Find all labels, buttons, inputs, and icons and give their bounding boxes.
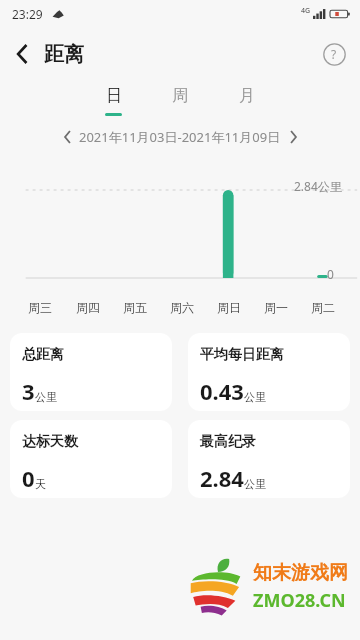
button[interactable]: 月 xyxy=(213,80,281,124)
staticText: 23:29 xyxy=(12,6,43,22)
staticText: 4G xyxy=(301,6,311,16)
staticText: 2.84公里 xyxy=(294,178,342,194)
staticText: 总距离 xyxy=(22,346,64,364)
staticText: 周一 xyxy=(264,300,288,315)
staticText: 3 xyxy=(22,376,35,406)
button[interactable]: Help xyxy=(319,39,349,69)
staticText: 平均每日距离 xyxy=(200,346,284,364)
staticText: 周五 xyxy=(123,300,147,315)
staticText: 公里 xyxy=(244,477,266,491)
staticText: 周六 xyxy=(170,300,194,315)
staticText: 周二 xyxy=(311,300,335,315)
staticText: 周三 xyxy=(28,300,52,315)
staticText: 知末游戏网 xyxy=(253,561,348,585)
button[interactable]: 最高纪录 xyxy=(188,420,350,498)
button[interactable]: 日 xyxy=(79,80,147,124)
button[interactable]: Back xyxy=(0,32,44,76)
staticText: 达标天数 xyxy=(22,433,78,451)
staticText: ZMO28.CN xyxy=(253,588,346,613)
staticText: 2021年11月03日-2021年11月09日 xyxy=(79,128,281,146)
button[interactable]: 总距离 xyxy=(10,333,172,411)
staticText: 公里 xyxy=(35,390,57,404)
button[interactable]: Next week xyxy=(281,125,305,149)
staticText: 日 xyxy=(106,86,122,106)
button[interactable]: 周 xyxy=(146,80,214,124)
staticText: 公里 xyxy=(244,390,266,404)
staticText: ? xyxy=(331,46,337,62)
staticText: 2.84 xyxy=(200,463,244,493)
staticText: 最高纪录 xyxy=(200,433,256,451)
staticText: 周 xyxy=(172,86,188,106)
button[interactable]: 达标天数 xyxy=(10,420,172,498)
staticText: 0.43 xyxy=(200,376,244,406)
staticText: 天 xyxy=(35,477,46,491)
staticText: 周四 xyxy=(76,300,100,315)
staticText: 周日 xyxy=(217,300,241,315)
staticText: 0 xyxy=(327,266,334,282)
button[interactable]: 平均每日距离 xyxy=(188,333,350,411)
button[interactable]: Previous week xyxy=(55,125,79,149)
staticText: 0 xyxy=(22,463,35,493)
staticText: 距离 xyxy=(44,42,84,67)
staticText: 月 xyxy=(239,86,255,106)
